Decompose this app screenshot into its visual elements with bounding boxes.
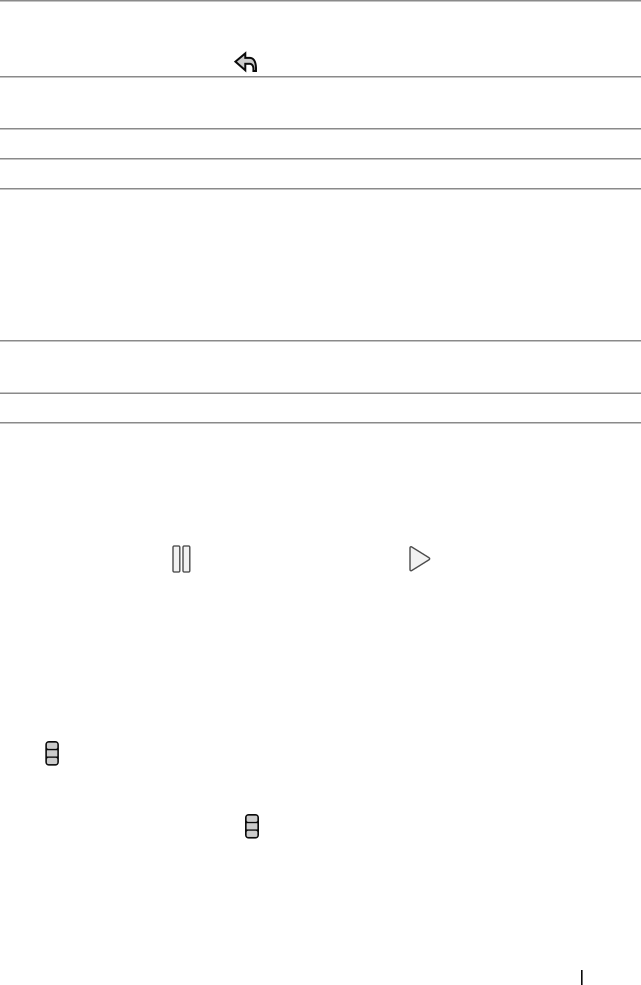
button[interactable]: Pause bbox=[173, 546, 190, 572]
button[interactable]: Play bbox=[410, 546, 430, 571]
button[interactable]: Reply bbox=[235, 53, 256, 71]
